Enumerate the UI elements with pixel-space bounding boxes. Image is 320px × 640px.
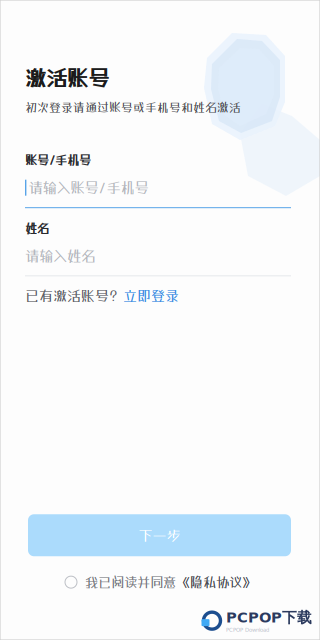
button[interactable]: 下一步 xyxy=(28,514,291,556)
staticText: 激活账号 xyxy=(25,65,109,90)
staticText: PCPOP下载 xyxy=(226,608,312,627)
staticText: 我已阅读并同意 xyxy=(85,574,176,590)
button[interactable]: 我已阅读并同意 xyxy=(65,574,255,590)
staticText: 已有激活账号？ xyxy=(25,287,123,304)
staticText: 初次登录请通过账号或手机号和姓名激活 xyxy=(25,100,241,114)
staticText: 账号/手机号 xyxy=(25,153,91,167)
staticText: 立即登录 xyxy=(123,287,179,304)
button[interactable]: 立即登录 xyxy=(123,287,179,304)
staticText: 下一步 xyxy=(138,527,180,543)
staticText: 请输入姓名 xyxy=(25,247,95,264)
staticText: 请输入账号/手机号 xyxy=(28,179,148,196)
staticText: PCPOP Download xyxy=(226,627,269,633)
staticText: 姓名 xyxy=(25,221,49,235)
staticText: 《隐私协议》 xyxy=(177,574,255,590)
